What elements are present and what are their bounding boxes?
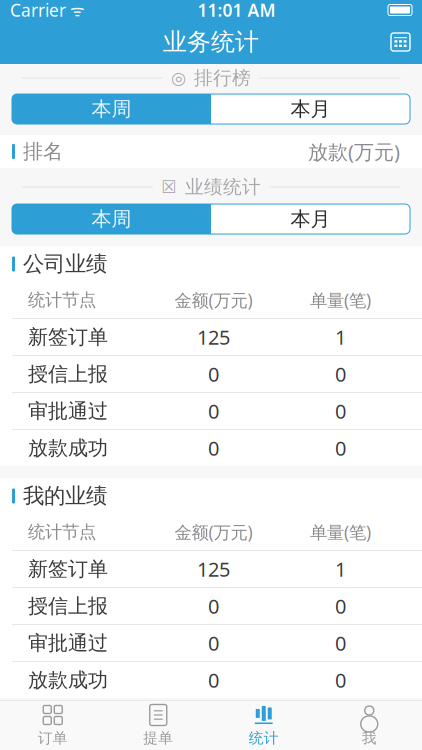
staticText: 0 [208,361,219,387]
staticText: 0 [335,630,346,656]
staticText: 0 [335,667,346,693]
button[interactable]: 本周 [12,204,211,234]
staticText: 125 [197,556,230,582]
staticText: 金额(万元) [174,520,252,543]
staticText: 统计节点 [28,521,96,543]
staticText: 新签订单 [28,557,108,581]
staticText: 授信上报 [28,362,108,386]
staticText: 0 [335,398,346,424]
staticText: 统计 [249,729,279,747]
staticText: 我的业绩 [23,483,107,509]
staticText: 审批通过 [28,399,108,423]
staticText: 125 [197,324,230,350]
staticText: 排行榜 [194,66,251,89]
staticText: 0 [335,593,346,619]
button[interactable]: 提单 [105,701,211,750]
staticText: 排名 [23,139,63,164]
button[interactable]: 统计 [211,701,316,750]
staticText: Carrier [10,0,66,21]
staticText: ☒ [161,177,177,197]
staticText: 本周 [91,97,131,121]
staticText: 放款成功 [28,668,108,692]
staticText: 本月 [290,207,330,231]
staticText: 11:01 AM [197,0,275,21]
staticText: 审批通过 [28,631,108,655]
button[interactable]: 本月 [211,94,410,124]
staticText: 0 [208,630,219,656]
staticText: 0 [335,361,346,387]
staticText: 1 [335,556,346,582]
staticText: 0 [335,435,346,461]
staticText: 金额(万元) [174,288,252,311]
staticText: 0 [208,398,219,424]
staticText: 授信上报 [28,594,108,618]
staticText: 单量(笔) [310,520,371,543]
staticText: 0 [208,435,219,461]
staticText: 业务统计 [163,27,259,57]
staticText: 公司业绩 [23,251,107,277]
staticText: 本周 [91,207,131,231]
staticText: 0 [208,593,219,619]
staticText: 1 [335,324,346,350]
staticText: ◎ [171,68,186,88]
staticText: 放款(万元) [308,138,400,165]
staticText: 业绩统计 [185,175,261,198]
staticText: 本月 [290,97,330,121]
staticText: 放款成功 [28,436,108,460]
staticText: 新签订单 [28,325,108,349]
staticText: 0 [208,667,219,693]
staticText: 单量(笔) [310,288,371,311]
button[interactable]: 订单 [0,701,105,750]
staticText: 统计节点 [28,289,96,311]
button[interactable]: Select date [379,20,422,64]
staticText: 订单 [38,729,68,747]
button[interactable]: 本月 [211,204,410,234]
button[interactable]: 我 [316,701,422,750]
button[interactable]: 本周 [12,94,211,124]
staticText: ᯤ [66,0,85,21]
staticText: 提单 [143,729,173,747]
staticText: 我 [362,729,377,747]
